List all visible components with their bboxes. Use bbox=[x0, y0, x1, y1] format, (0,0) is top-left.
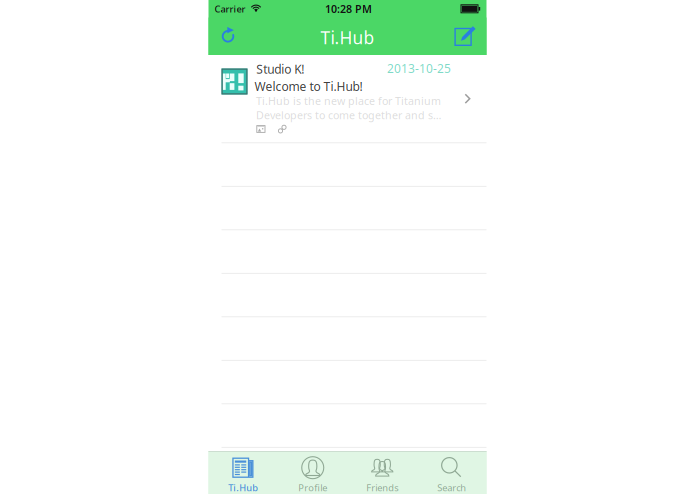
staticText: Friends bbox=[366, 481, 398, 494]
button[interactable]: Ti.Hub bbox=[208, 451, 278, 494]
staticText: Studio K! bbox=[256, 61, 304, 77]
button[interactable]: Refresh bbox=[208, 17, 250, 55]
button[interactable]: Friends bbox=[347, 451, 417, 494]
staticText: 2013-10-25 bbox=[387, 60, 451, 76]
button[interactable]: Studio K! bbox=[208, 55, 486, 142]
staticText: Carrier bbox=[214, 3, 245, 15]
button[interactable]: Profile bbox=[278, 451, 347, 494]
button[interactable]: Search bbox=[417, 451, 486, 494]
staticText: 10:28 PM bbox=[325, 2, 372, 16]
staticText: Search bbox=[437, 481, 466, 494]
staticText: Welcome to Ti.Hub! bbox=[254, 78, 362, 94]
button[interactable]: Compose bbox=[444, 17, 486, 55]
staticText: Ti.Hub bbox=[228, 481, 258, 494]
staticText: Ti.Hub bbox=[320, 26, 374, 49]
staticText: Developers to come together and s… bbox=[256, 108, 441, 122]
staticText: Ti.Hub is the new place for Titanium bbox=[256, 94, 441, 108]
staticText: Profile bbox=[298, 481, 327, 494]
